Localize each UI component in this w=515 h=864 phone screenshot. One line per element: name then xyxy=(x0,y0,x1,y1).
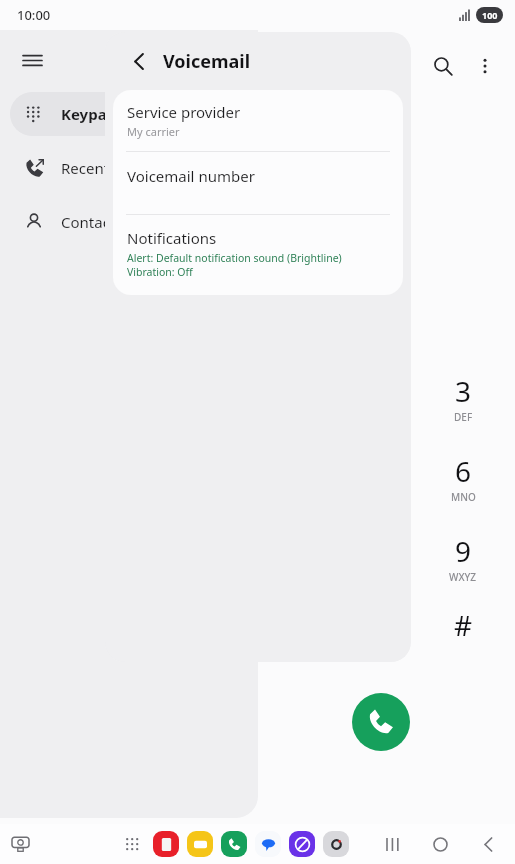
button[interactable]: Back xyxy=(121,43,157,79)
staticText: 10:00 xyxy=(17,6,51,24)
button[interactable]: Recents xyxy=(379,831,405,857)
button[interactable]: Back xyxy=(475,831,501,857)
button[interactable]: # xyxy=(419,606,507,644)
staticText: # xyxy=(454,606,473,644)
staticText: Keypad xyxy=(61,104,117,124)
button[interactable]: Screen xyxy=(4,828,36,860)
button[interactable]: Contacts xyxy=(10,200,248,244)
staticText: Recents xyxy=(61,158,117,178)
button[interactable]: 9 xyxy=(419,532,507,584)
staticText: WXYZ xyxy=(449,570,477,584)
button[interactable]: Recents xyxy=(10,146,248,190)
button[interactable]: Menu xyxy=(10,38,54,82)
staticText: 9 xyxy=(455,532,472,570)
staticText: 3 xyxy=(455,372,472,410)
button[interactable]: More options xyxy=(465,46,505,86)
button[interactable]: Messages xyxy=(255,831,281,857)
button[interactable]: Files xyxy=(187,831,213,857)
staticText: 100 xyxy=(482,9,498,21)
button[interactable]: 6 xyxy=(419,452,507,504)
staticText: Voicemail number xyxy=(127,166,255,186)
button[interactable]: Home xyxy=(427,831,453,857)
staticText: MNO xyxy=(451,490,476,504)
button[interactable]: Service provider xyxy=(113,90,403,151)
staticText: Service provider xyxy=(127,102,241,122)
staticText: Voicemail xyxy=(163,49,251,74)
button[interactable]: Keypad xyxy=(10,92,248,136)
button[interactable]: Call xyxy=(352,693,410,751)
button[interactable]: Notes xyxy=(153,831,179,857)
staticText: Vibration: Off xyxy=(127,265,193,279)
button[interactable]: Voicemail number xyxy=(113,152,403,214)
staticText: My carrier xyxy=(127,124,180,139)
button[interactable]: Search xyxy=(421,44,465,88)
button[interactable]: Camera xyxy=(323,831,349,857)
button[interactable]: Notifications xyxy=(113,215,403,295)
button[interactable]: Apps xyxy=(119,831,145,857)
staticText: DEF xyxy=(454,410,473,424)
staticText: Notifications xyxy=(127,228,217,248)
staticText: 6 xyxy=(455,452,472,490)
button[interactable]: Internet xyxy=(289,831,315,857)
staticText: Alert: Default notification sound (Brigh… xyxy=(127,251,342,265)
staticText: Contacts xyxy=(61,212,123,232)
button[interactable]: 3 xyxy=(419,372,507,424)
button[interactable]: Phone xyxy=(221,831,247,857)
